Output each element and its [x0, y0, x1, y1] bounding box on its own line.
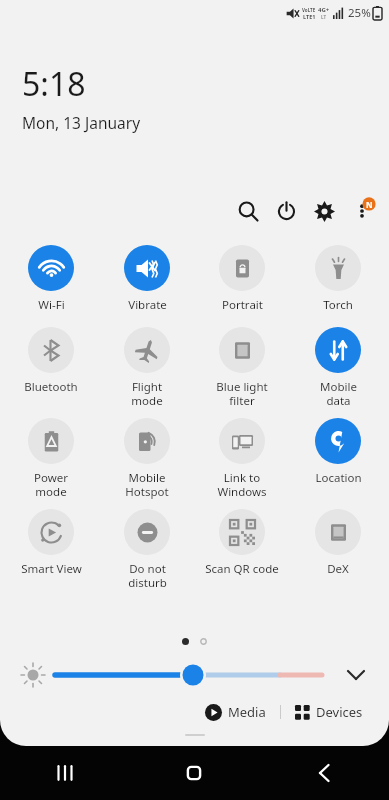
button[interactable]: DeX [293, 507, 383, 577]
staticText: Wi-Fi [38, 297, 65, 313]
staticText: LT [321, 14, 327, 20]
staticText: Power mode [34, 470, 68, 499]
button[interactable]: Blue light filter [197, 325, 287, 408]
staticText: Smart View [21, 561, 82, 577]
staticText: 4G+ [318, 6, 330, 14]
button[interactable]: Mobile data [293, 325, 383, 408]
button[interactable]: Do not disturb [102, 507, 192, 590]
button[interactable]: Recents [0, 746, 129, 800]
staticText: Do not disturb [128, 561, 167, 590]
staticText: Flight mode [131, 379, 163, 408]
staticText: Scan QR code [205, 561, 279, 577]
staticText: Location [315, 470, 362, 486]
button[interactable]: Link to Windows [197, 416, 287, 499]
button[interactable]: Torch [293, 243, 383, 313]
button[interactable]: Bluetooth [6, 325, 96, 395]
staticText: Mobile Hotspot [125, 470, 169, 499]
button[interactable]: Scan QR code [197, 507, 287, 577]
staticText: 25% [348, 5, 371, 21]
staticText: Bluetooth [24, 379, 78, 395]
staticText: Link to Windows [217, 470, 267, 499]
button[interactable]: Power mode [6, 416, 96, 499]
button[interactable]: Vibrate [102, 243, 192, 313]
staticText: Vibrate [128, 297, 167, 313]
staticText: Blue light filter [216, 379, 268, 408]
button[interactable]: Wi-Fi [6, 243, 96, 313]
button[interactable]: Search [229, 192, 267, 230]
button[interactable]: Settings [305, 192, 343, 230]
staticText: Portrait [222, 297, 263, 313]
staticText: DeX [327, 561, 349, 577]
staticText: 5:18 [22, 62, 86, 106]
staticText: Torch [323, 297, 353, 313]
button[interactable]: Mobile Hotspot [102, 416, 192, 499]
button[interactable]: Media [201, 700, 270, 724]
staticText: LTE1 [303, 13, 316, 20]
staticText: VoLTE [302, 7, 316, 13]
button[interactable]: Back [259, 746, 389, 800]
button[interactable]: Location [293, 416, 383, 486]
button[interactable]: More options [343, 192, 381, 230]
staticText: N [366, 199, 373, 210]
button[interactable]: Power [267, 192, 305, 230]
staticText: Media [228, 703, 266, 721]
staticText: Mon, 13 January [22, 112, 141, 133]
button[interactable]: Smart View [6, 507, 96, 577]
button[interactable]: Home [129, 746, 259, 800]
button[interactable]: Brightness [0, 655, 389, 695]
button[interactable]: Flight mode [102, 325, 192, 408]
button[interactable]: Devices [291, 700, 367, 724]
button[interactable]: Portrait [197, 243, 287, 313]
staticText: Mobile data [320, 379, 357, 408]
staticText: Devices [316, 703, 363, 721]
